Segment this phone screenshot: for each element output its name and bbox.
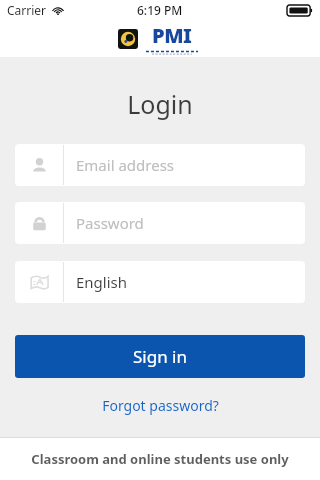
button[interactable]: Email address <box>15 144 305 186</box>
staticText: Carrier <box>7 2 47 18</box>
staticText: PMI <box>152 22 192 49</box>
staticText: Password <box>76 213 144 233</box>
staticText: Classroom and online students use only <box>31 450 289 468</box>
button[interactable]: English <box>15 261 305 303</box>
staticText: 6:19 PM <box>137 2 183 18</box>
button[interactable]: Password <box>15 202 305 244</box>
staticText: Sign in <box>133 345 187 368</box>
staticText: Login <box>0 87 320 121</box>
staticText: Forgot password? <box>102 396 219 415</box>
button[interactable]: Forgot password? <box>0 396 320 415</box>
staticText: English <box>76 272 128 292</box>
button[interactable]: Sign in <box>15 335 305 378</box>
staticText: Email address <box>76 155 175 175</box>
